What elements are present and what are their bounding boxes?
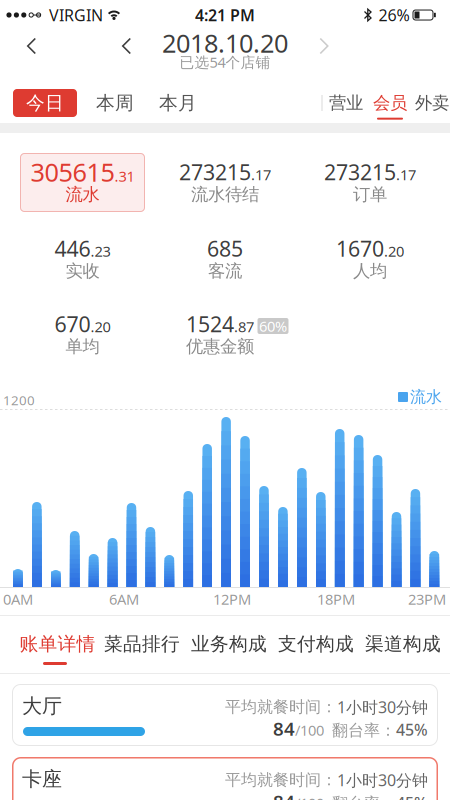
staticText: 6AM — [109, 589, 139, 609]
staticText: .31 — [114, 166, 134, 186]
button[interactable] — [20, 31, 43, 61]
button[interactable]: 本月 — [159, 91, 197, 114]
staticText: 26% — [378, 4, 409, 26]
staticText: 实收 — [65, 260, 99, 282]
staticText: 305615 — [30, 155, 114, 189]
staticText: 1670 — [336, 234, 384, 263]
staticText: .23 — [90, 241, 110, 261]
staticText: 翻台率： — [332, 721, 396, 740]
staticText: 4:21 PM — [195, 4, 255, 26]
staticText: 23PM — [408, 589, 446, 609]
staticText: 1小时30分钟 — [337, 696, 428, 718]
button[interactable]: 业务构成 — [191, 632, 267, 655]
staticText: 平均就餐时间： — [225, 697, 337, 717]
staticText: 流水 — [410, 387, 442, 407]
staticText: 大厅 — [22, 694, 62, 718]
staticText: 翻台率： — [332, 794, 396, 800]
staticText: 外卖 — [415, 92, 449, 114]
staticText: 优惠金额 — [186, 336, 254, 357]
staticText: 支付构成 — [278, 632, 354, 655]
button[interactable]: 今日 — [13, 89, 77, 117]
staticText: 670 — [54, 310, 90, 338]
staticText: VIRGIN — [49, 4, 103, 26]
staticText: .20 — [384, 241, 404, 261]
staticText: 平均就餐时间： — [225, 770, 337, 790]
staticText: 45% — [396, 792, 428, 800]
staticText: 今日 — [26, 91, 64, 114]
button[interactable]: 本周 — [96, 91, 134, 114]
staticText: 18PM — [317, 589, 355, 609]
staticText: 账单详情 — [19, 632, 95, 655]
staticText: 1200 — [3, 391, 35, 409]
staticText: .17 — [251, 165, 271, 184]
button[interactable]: 大厅 — [12, 684, 438, 746]
staticText: 卡座 — [22, 767, 62, 791]
button[interactable]: 支付构成 — [278, 632, 354, 655]
staticText: 人均 — [353, 260, 387, 282]
staticText: 本周 — [96, 91, 134, 114]
button[interactable]: 卡座 — [12, 757, 438, 800]
button[interactable]: 账单详情 — [19, 632, 95, 655]
staticText: 685 — [207, 234, 243, 263]
button[interactable]: 会员 — [373, 92, 407, 120]
staticText: 60% — [259, 316, 287, 336]
staticText: 0AM — [3, 589, 33, 609]
staticText: 客流 — [208, 260, 242, 282]
staticText: 273215 — [324, 158, 396, 186]
button[interactable] — [313, 31, 335, 61]
button[interactable]: 渠道构成 — [365, 632, 441, 655]
staticText: 84 — [273, 716, 295, 741]
staticText: 2018.10.20 — [162, 26, 288, 60]
staticText: 菜品排行 — [104, 632, 180, 655]
staticText: 446 — [54, 234, 90, 263]
staticText: 已选54个店铺 — [179, 52, 270, 72]
staticText: 业务构成 — [191, 632, 267, 655]
staticText: .20 — [90, 317, 110, 336]
staticText: 84 — [273, 789, 295, 800]
staticText: /100 — [295, 720, 324, 740]
staticText: 订单 — [353, 184, 387, 205]
staticText: 1小时30分钟 — [337, 769, 428, 791]
staticText: /100 — [295, 793, 324, 800]
staticText: 渠道构成 — [365, 632, 441, 655]
staticText: 单均 — [65, 336, 99, 357]
staticText: 流水待结 — [191, 184, 259, 205]
button[interactable]: 菜品排行 — [104, 632, 180, 655]
staticText: .17 — [396, 165, 416, 184]
button[interactable]: 营业 — [329, 92, 363, 114]
staticText: 营业 — [329, 92, 363, 114]
staticText: 45% — [396, 719, 428, 740]
staticText: 本月 — [159, 91, 197, 114]
staticText: 会员 — [373, 92, 407, 114]
staticText: .87 — [234, 317, 254, 336]
staticText: 1524 — [186, 310, 234, 338]
staticText: 流水 — [65, 184, 99, 205]
staticText: 273215 — [179, 158, 251, 186]
staticText: 12PM — [213, 589, 251, 609]
button[interactable] — [115, 31, 138, 61]
button[interactable]: 外卖 — [415, 92, 449, 114]
